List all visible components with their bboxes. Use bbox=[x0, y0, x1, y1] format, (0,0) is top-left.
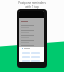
staticText: Postpone reminders with 1 tap bbox=[15, 1, 49, 8]
